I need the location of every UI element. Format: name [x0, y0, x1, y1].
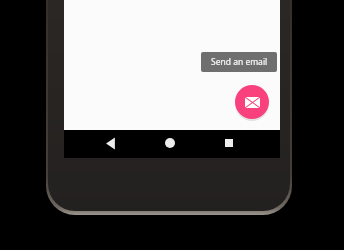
- button[interactable]: Send an email: [201, 52, 277, 72]
- button[interactable]: [235, 85, 269, 119]
- staticText: Send an email: [211, 56, 268, 68]
- button[interactable]: [103, 137, 117, 150]
- button[interactable]: [165, 138, 175, 148]
